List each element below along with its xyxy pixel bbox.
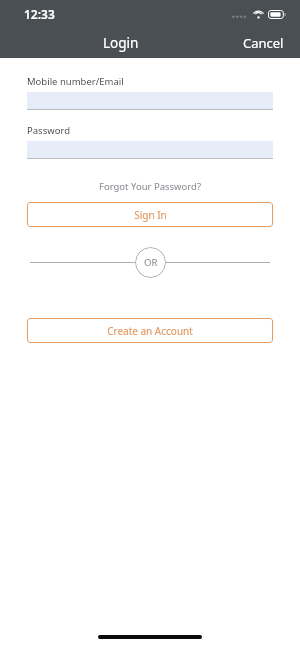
button[interactable]: Forgot Your Password?: [0, 178, 300, 195]
staticText: 12:33: [24, 6, 55, 22]
staticText: Sign In: [134, 208, 167, 222]
staticText: Login: [103, 34, 139, 52]
staticText: Cancel: [243, 34, 284, 52]
staticText: Password: [27, 124, 70, 137]
staticText: Create an Account: [107, 324, 193, 338]
staticText: Mobile number/Email: [27, 75, 124, 88]
button[interactable]: Create an Account: [27, 318, 273, 343]
button[interactable]: [27, 141, 273, 159]
button[interactable]: Sign In: [27, 202, 273, 227]
button[interactable]: [27, 92, 273, 110]
button[interactable]: Cancel: [241, 30, 286, 56]
staticText: OR: [144, 256, 158, 269]
staticText: Forgot Your Password?: [99, 180, 202, 193]
